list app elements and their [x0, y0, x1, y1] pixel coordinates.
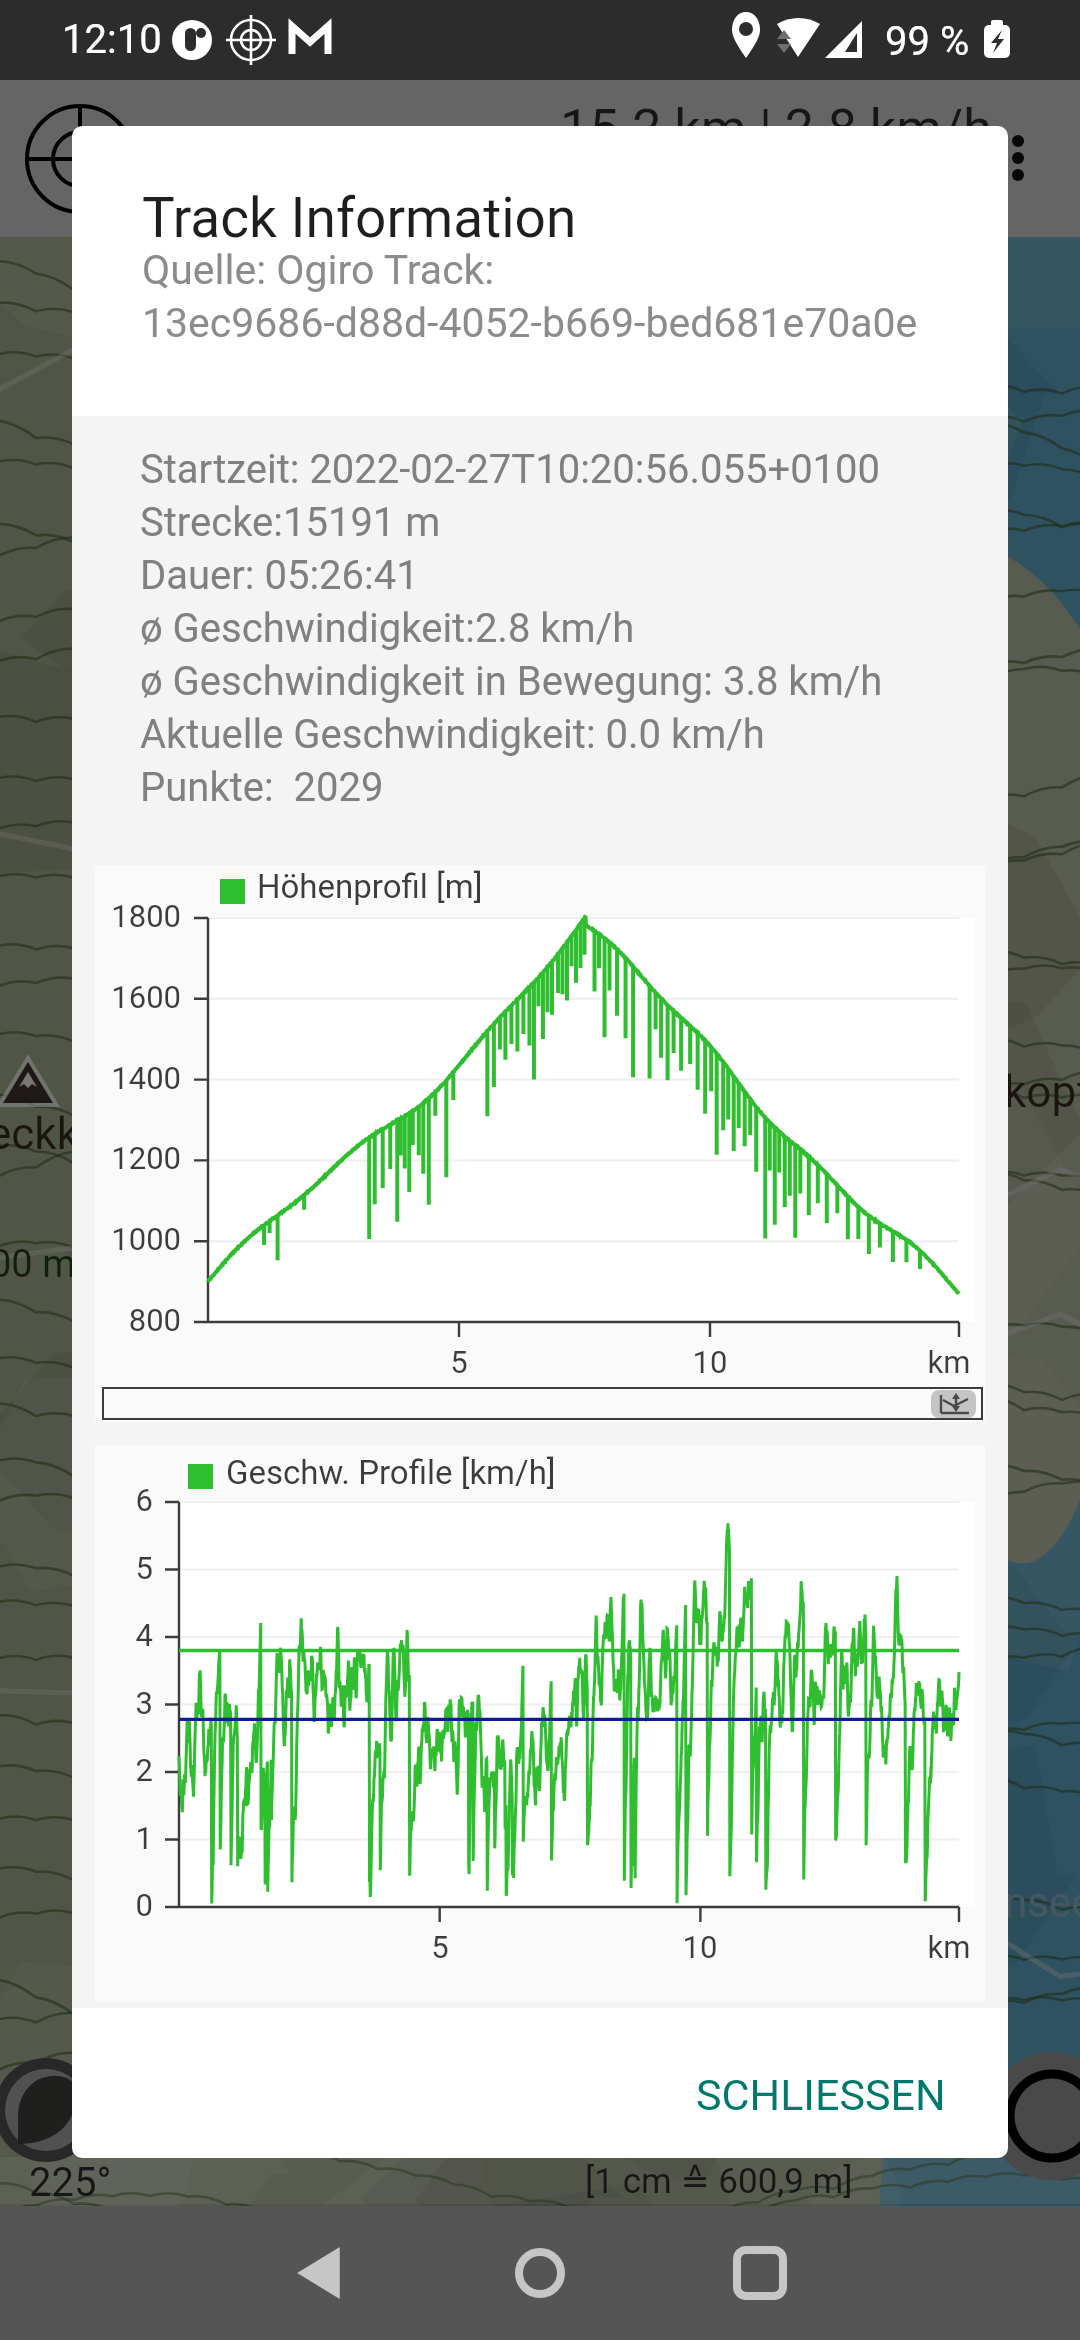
- staticText: 0: [72, 1887, 153, 1923]
- staticText: 3: [72, 1685, 153, 1721]
- staticText: Quelle: Ogiro Track: 13ec9686-d88d-4052-…: [142, 246, 918, 347]
- staticText: nsee: [1004, 1878, 1080, 1927]
- staticText: 12:10: [62, 16, 162, 63]
- staticText: 10: [650, 1344, 770, 1380]
- staticText: Geschw. Profile [km/h]: [226, 1453, 556, 1492]
- staticText: [1 cm ≙ 600,9 m]: [585, 2161, 853, 2202]
- staticText: 1000: [72, 1221, 181, 1257]
- staticText: 225°: [29, 2159, 112, 2206]
- staticText: 1400: [72, 1060, 181, 1096]
- staticText: km: [889, 1344, 1008, 1380]
- staticText: Höhenprofil [m]: [257, 867, 483, 906]
- button[interactable]: My location: [0, 2058, 98, 2162]
- staticText: 5: [380, 1929, 500, 1965]
- staticText: 1600: [72, 979, 181, 1015]
- staticText: Startzeit: 2022-02-27T10:20:56.055+0100 …: [140, 446, 883, 811]
- staticText: 1200: [72, 1140, 181, 1176]
- staticText: 1800: [72, 898, 181, 934]
- staticText: 99 %: [885, 18, 970, 65]
- button[interactable]: Back: [260, 2213, 380, 2333]
- staticText: 800: [72, 1302, 181, 1338]
- staticText: 6: [72, 1482, 153, 1518]
- staticText: kopf: [1004, 1066, 1080, 1118]
- button[interactable]: Home: [480, 2213, 600, 2333]
- staticText: 10: [640, 1929, 760, 1965]
- staticText: Track Information: [142, 186, 577, 250]
- staticText: 5: [72, 1550, 153, 1586]
- button[interactable]: Recent apps: [700, 2213, 820, 2333]
- staticText: 5: [399, 1344, 519, 1380]
- staticText: 2: [72, 1752, 153, 1788]
- staticText: 00 m: [0, 1242, 76, 1287]
- staticText: SCHLIESSEN: [696, 2070, 946, 2120]
- button[interactable]: SCHLIESSEN: [674, 2048, 968, 2142]
- staticText: km: [889, 1929, 1008, 1965]
- staticText: 1: [72, 1820, 153, 1856]
- staticText: 4: [72, 1617, 153, 1653]
- staticText: 15.2 km | 2.8 km/h: [560, 98, 992, 159]
- staticText: eckk: [0, 1108, 79, 1160]
